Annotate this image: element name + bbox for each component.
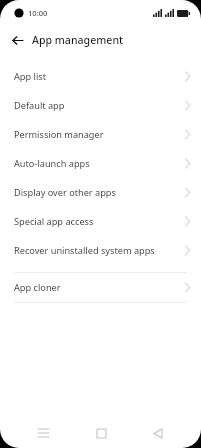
- staticText: App management: [32, 33, 124, 47]
- button[interactable]: Auto-launch apps: [0, 149, 201, 178]
- staticText: Special app access: [14, 215, 185, 228]
- button[interactable]: App list: [0, 62, 201, 91]
- button[interactable]: Recents: [28, 418, 58, 448]
- staticText: Auto-launch apps: [14, 157, 185, 170]
- button[interactable]: Display over other apps: [0, 178, 201, 207]
- staticText: Default app: [14, 99, 185, 112]
- button[interactable]: Default app: [0, 91, 201, 120]
- staticText: App cloner: [14, 281, 185, 294]
- staticText: Recover uninstalled system apps: [14, 244, 185, 257]
- button[interactable]: Recover uninstalled system apps: [0, 236, 201, 265]
- button[interactable]: App cloner: [0, 273, 201, 302]
- button[interactable]: Home: [86, 418, 116, 448]
- staticText: 10:00: [28, 8, 48, 18]
- staticText: Display over other apps: [14, 186, 185, 199]
- button[interactable]: Special app access: [0, 207, 201, 236]
- staticText: Permission manager: [14, 128, 185, 141]
- button[interactable]: Back: [143, 418, 173, 448]
- button[interactable]: Permission manager: [0, 120, 201, 149]
- staticText: App list: [14, 70, 185, 83]
- button[interactable]: Back: [7, 30, 27, 50]
